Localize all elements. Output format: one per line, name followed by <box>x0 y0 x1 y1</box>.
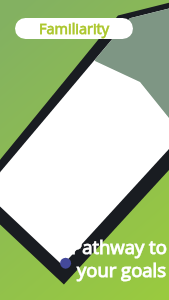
staticText: Familiarity <box>39 19 110 39</box>
staticText: Pathway to <box>71 234 167 259</box>
button[interactable]: Familiarity <box>15 18 133 39</box>
staticText: your goals <box>77 257 167 282</box>
